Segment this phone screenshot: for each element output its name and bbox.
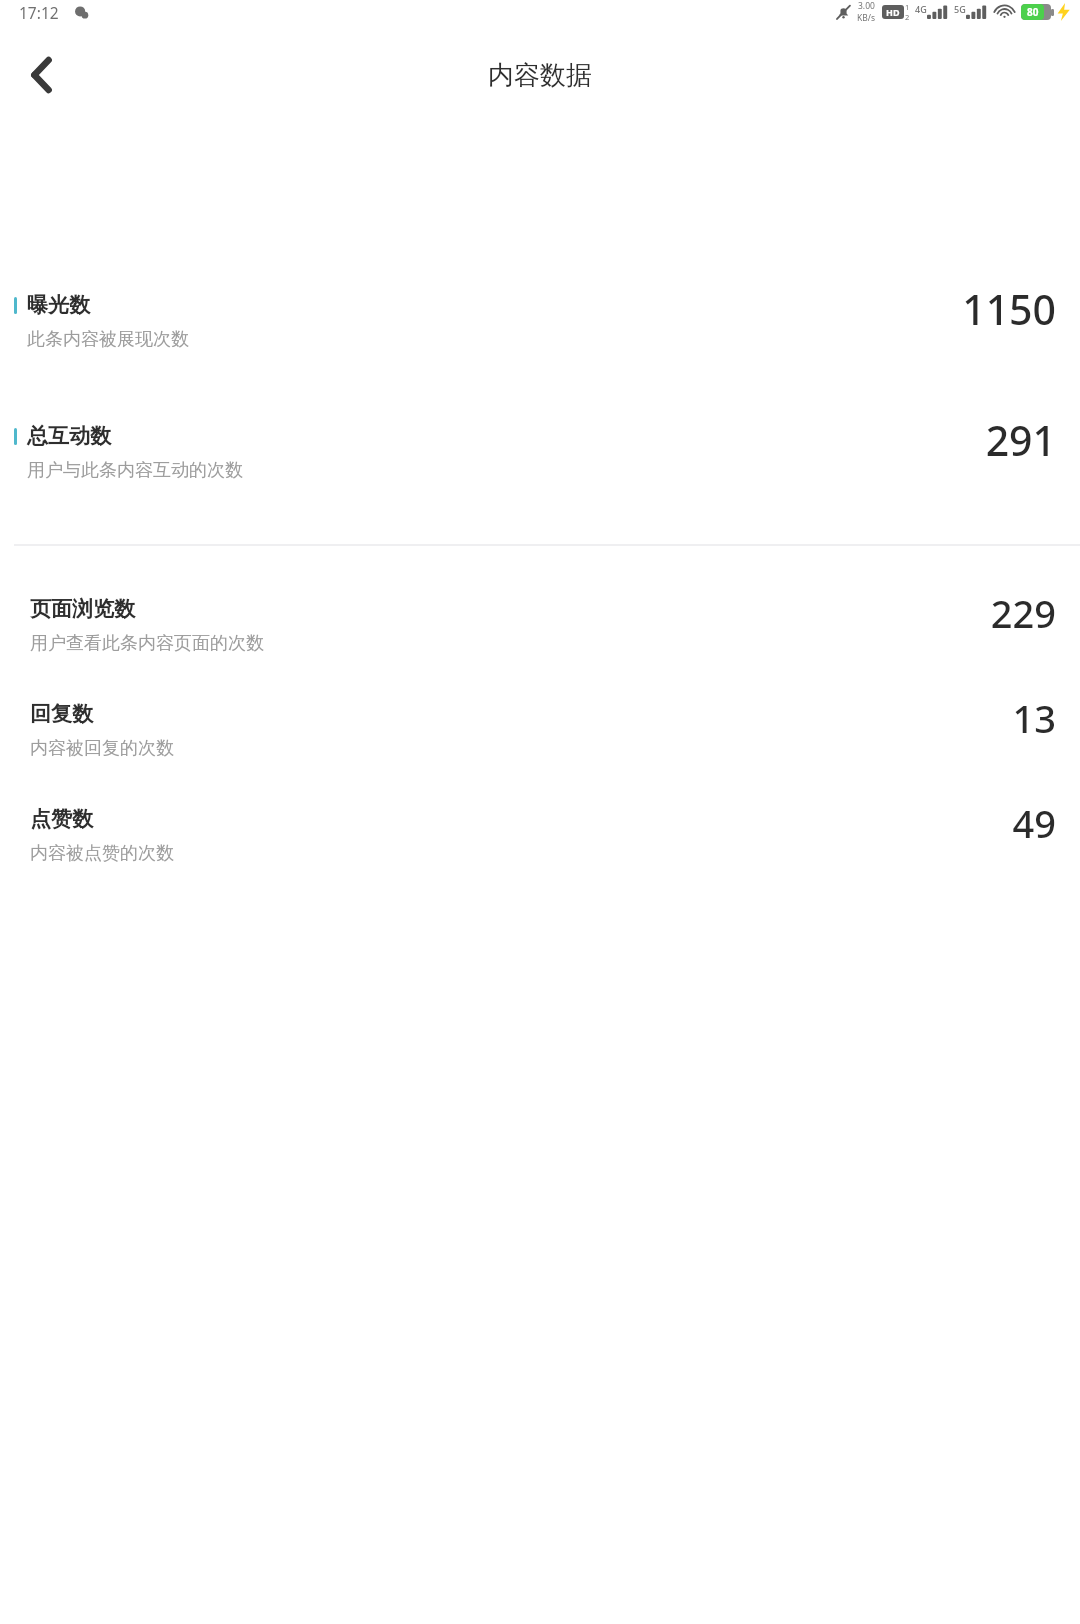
staticText: 13 bbox=[1012, 692, 1056, 744]
staticText: 1150 bbox=[962, 281, 1056, 337]
staticText: HD bbox=[886, 6, 900, 18]
staticText: 80 bbox=[1027, 5, 1039, 19]
staticText: 17:12 bbox=[19, 2, 59, 23]
button[interactable]: 总互动数 bbox=[0, 423, 1080, 482]
staticText: 3.00 bbox=[858, 0, 875, 12]
staticText: 回复数 bbox=[30, 701, 93, 727]
staticText: 总互动数 bbox=[27, 423, 111, 449]
staticText: 5G bbox=[954, 3, 966, 15]
button[interactable]: 页面浏览数 bbox=[0, 596, 1080, 655]
staticText: KB/s bbox=[857, 12, 876, 24]
button[interactable]: Back bbox=[14, 48, 68, 102]
button[interactable]: 回复数 bbox=[0, 701, 1080, 760]
staticText: 内容被回复的次数 bbox=[30, 737, 174, 760]
staticText: 49 bbox=[1012, 797, 1056, 849]
button[interactable]: 点赞数 bbox=[0, 806, 1080, 865]
staticText: 用户查看此条内容页面的次数 bbox=[30, 632, 264, 655]
staticText: 此条内容被展现次数 bbox=[27, 328, 189, 351]
staticText: 2 bbox=[905, 12, 910, 22]
staticText: 点赞数 bbox=[30, 806, 93, 832]
button[interactable]: 曝光数 bbox=[0, 292, 1080, 351]
staticText: 曝光数 bbox=[27, 292, 90, 318]
staticText: 用户与此条内容互动的次数 bbox=[27, 459, 243, 482]
staticText: 页面浏览数 bbox=[30, 596, 135, 622]
staticText: 291 bbox=[985, 412, 1056, 468]
staticText: 1 bbox=[905, 2, 910, 12]
staticText: 4G bbox=[915, 3, 927, 15]
staticText: 内容被点赞的次数 bbox=[30, 842, 174, 865]
staticText: 内容数据 bbox=[488, 59, 592, 92]
staticText: 229 bbox=[990, 587, 1056, 639]
